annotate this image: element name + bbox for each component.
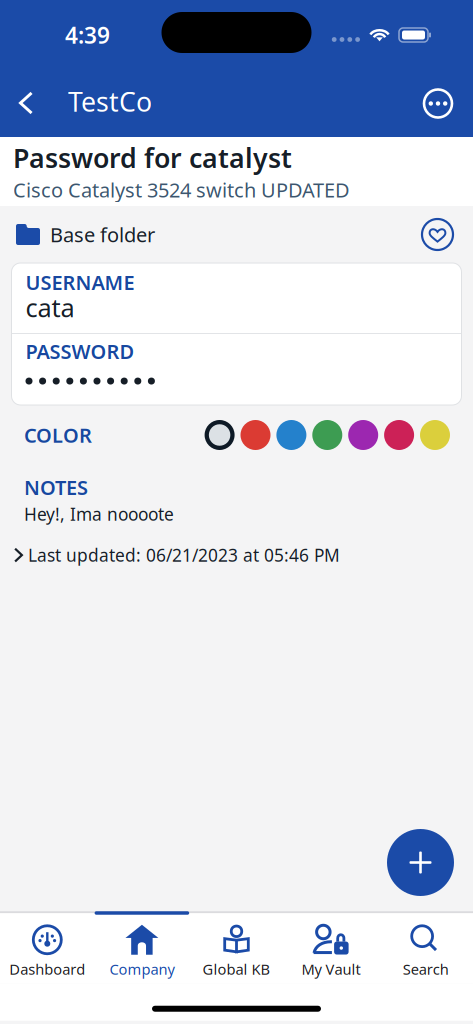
button[interactable]: Dashboard xyxy=(0,913,95,984)
staticText: TestCo xyxy=(68,84,152,119)
staticText: Global KB xyxy=(202,959,270,979)
button[interactable]: Colour swatch xyxy=(384,420,414,450)
button[interactable]: More options xyxy=(424,67,473,135)
button[interactable]: Last updated: 06/21/2023 at 05:46 PM xyxy=(0,526,473,573)
button[interactable]: Back xyxy=(0,73,68,129)
staticText: Hey!, Ima noooote xyxy=(24,503,174,526)
staticText: Base folder xyxy=(50,221,155,248)
staticText: cata xyxy=(25,291,74,324)
button[interactable]: Search xyxy=(378,913,473,984)
staticText: USERNAME xyxy=(25,269,134,296)
staticText: PASSWORD xyxy=(25,338,134,365)
button[interactable]: Colour swatch xyxy=(420,420,450,450)
button[interactable]: Global KB xyxy=(189,913,284,984)
button[interactable]: Colour swatch xyxy=(240,420,270,450)
button[interactable]: My Vault xyxy=(284,913,378,984)
button[interactable]: Favourite xyxy=(422,212,473,257)
staticText: Password for catalyst xyxy=(13,140,292,175)
button[interactable]: Company xyxy=(95,913,189,984)
staticText: Last updated: 06/21/2023 at 05:46 PM xyxy=(28,544,340,567)
staticText: Search xyxy=(403,959,449,979)
button[interactable]: Colour swatch xyxy=(348,420,378,450)
button[interactable]: Colour swatch xyxy=(276,420,306,450)
staticText: 4:39 xyxy=(65,20,110,50)
button[interactable]: Colour swatch xyxy=(205,420,235,450)
staticText: Company xyxy=(109,959,174,979)
staticText: COLOR xyxy=(24,422,92,448)
button[interactable]: Add xyxy=(387,829,454,896)
button[interactable]: Colour swatch xyxy=(312,420,342,450)
staticText: Dashboard xyxy=(9,959,85,979)
staticText: My Vault xyxy=(302,959,361,979)
staticText: NOTES xyxy=(24,474,88,501)
staticText: Cisco Catalyst 3524 switch UPDATED xyxy=(13,176,350,203)
